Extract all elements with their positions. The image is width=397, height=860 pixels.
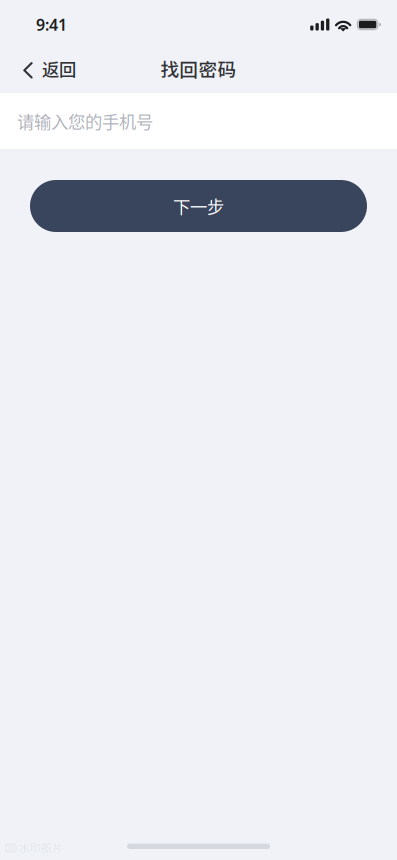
button[interactable]: 返回 [0,48,88,92]
staticText: 找回密码 [160,55,236,82]
staticText: 9:41 [36,14,67,35]
staticText: 请输入您的手机号 [17,108,153,134]
staticText: 水印图片 [19,841,63,854]
staticText: 下一步 [173,193,224,219]
button[interactable]: 下一步 [30,180,367,232]
staticText: 返回 [42,56,76,81]
